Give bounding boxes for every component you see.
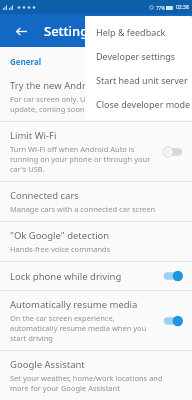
- button[interactable]: Start head unit server: [85, 68, 192, 92]
- staticText: "Ok Google" detection: [10, 229, 110, 242]
- button[interactable]: Toggle on: [162, 314, 184, 328]
- staticText: Set your weather, home/work locations an…: [10, 373, 182, 393]
- button[interactable]: Help & feedback: [85, 20, 192, 44]
- staticText: Lock phone while driving: [10, 270, 122, 283]
- button[interactable]: Toggle off: [162, 145, 184, 159]
- staticText: General: [10, 56, 42, 67]
- staticText: On the car screen experience, automatica…: [10, 313, 156, 343]
- staticText: Try the new Android Auto: [10, 79, 124, 92]
- button[interactable]: Developer settings: [85, 44, 192, 68]
- staticText: Automatically resume media: [10, 298, 138, 311]
- staticText: Developer settings: [96, 50, 176, 62]
- button[interactable]: Try the new Android Auto: [0, 72, 192, 121]
- staticText: 02:38: [176, 4, 189, 11]
- button[interactable]: Toggle on: [162, 269, 184, 283]
- button[interactable]: Limit Wi-Fi: [0, 122, 192, 181]
- staticText: Start head unit server: [96, 74, 188, 86]
- staticText: Hands-free voice commands: [10, 244, 111, 254]
- button[interactable]: Close developer mode: [85, 92, 192, 116]
- staticText: Manage cars with a connected car screen: [10, 204, 156, 214]
- staticText: Limit Wi-Fi: [10, 129, 57, 142]
- button[interactable]: "Ok Google" detection: [0, 222, 192, 261]
- staticText: For car screen only. Upcoming automatic …: [10, 94, 182, 114]
- staticText: Google Assistant: [10, 358, 85, 371]
- staticText: 77%: [156, 5, 165, 11]
- staticText: Connected cars: [10, 189, 79, 202]
- button[interactable]: Lock phone while driving: [0, 262, 192, 290]
- button[interactable]: Automatically resume media: [0, 291, 192, 350]
- staticText: Help & feedback: [96, 26, 166, 38]
- staticText: Close developer mode: [96, 98, 191, 110]
- staticText: Settings: [44, 22, 95, 40]
- button[interactable]: Connected cars: [0, 182, 192, 221]
- button[interactable]: Back: [10, 20, 32, 42]
- button[interactable]: Google Assistant: [0, 351, 192, 400]
- staticText: Turn Wi-Fi off when Android Auto is runn…: [10, 144, 156, 174]
